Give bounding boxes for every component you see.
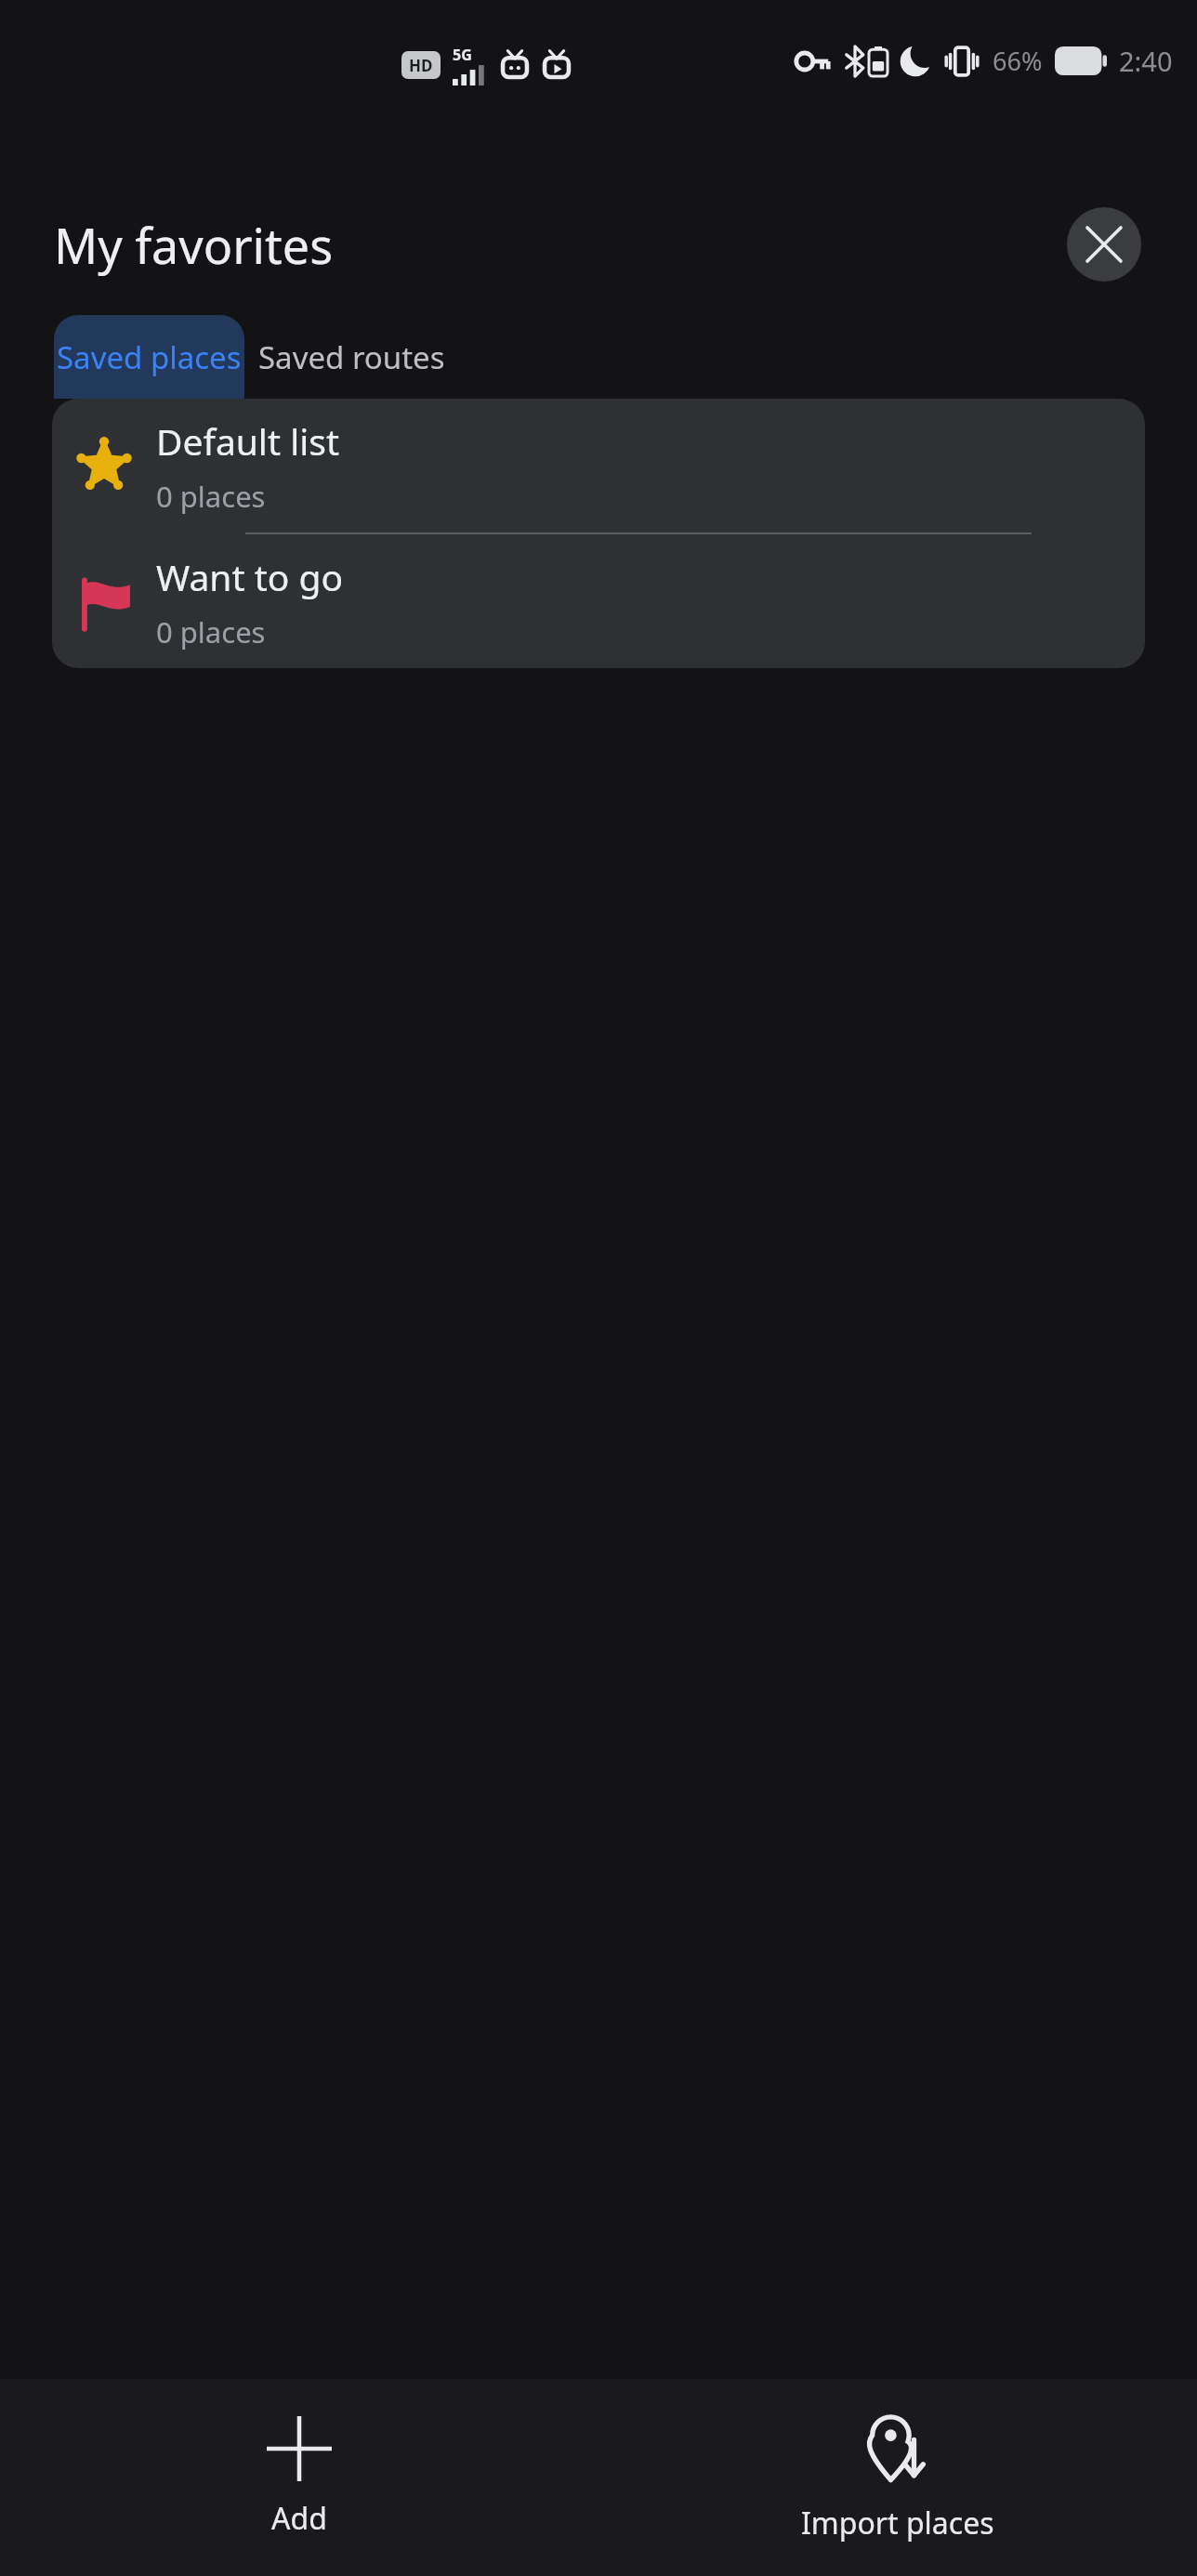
staticText: 0 places — [156, 612, 266, 651]
staticText: HD — [409, 55, 433, 76]
staticText: Saved places — [57, 336, 242, 378]
button[interactable]: Want to go — [52, 534, 1145, 668]
staticText: Import places — [801, 2503, 994, 2543]
staticText: 0 places — [156, 477, 266, 516]
staticText: 66% — [993, 44, 1043, 78]
staticText: My favorites — [54, 212, 334, 278]
other: Add — [267, 2416, 332, 2481]
staticText: 2:40 — [1119, 43, 1173, 79]
button[interactable]: Add — [0, 2379, 598, 2576]
staticText: 5G — [453, 45, 472, 65]
button[interactable]: Default list — [52, 399, 1145, 532]
button[interactable]: Saved places — [54, 315, 244, 399]
other: Import places — [862, 2412, 933, 2486]
staticText: Default list — [156, 416, 340, 466]
staticText: Saved routes — [258, 336, 445, 378]
button[interactable]: Import places — [598, 2379, 1197, 2576]
button[interactable]: Close — [1067, 207, 1141, 282]
staticText: Want to go — [156, 552, 344, 601]
button[interactable]: Saved routes — [244, 315, 458, 399]
staticText: Add — [271, 2498, 327, 2539]
